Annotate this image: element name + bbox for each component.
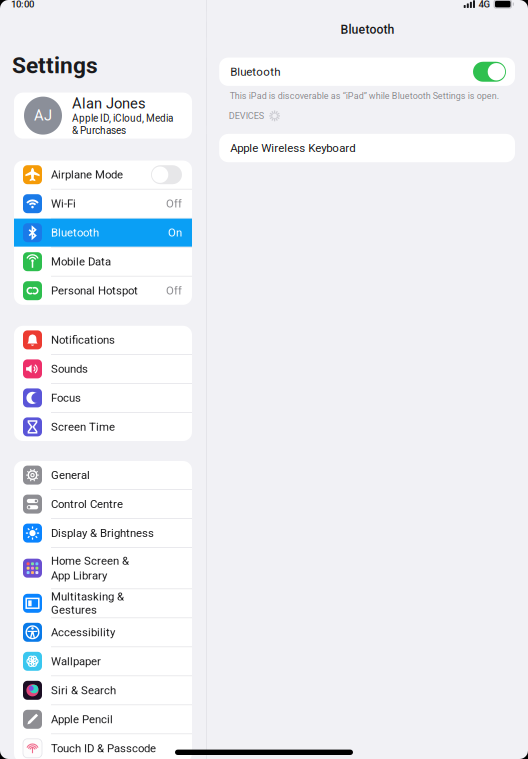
staticText: App Library: [51, 569, 107, 582]
staticText: Focus: [51, 391, 81, 405]
button[interactable]: Notifications: [14, 326, 192, 354]
button[interactable]: Siri & Search: [14, 676, 192, 704]
button[interactable]: AJ: [14, 93, 192, 139]
button[interactable]: Display & Brightness: [14, 519, 192, 547]
staticText: Off: [166, 197, 182, 210]
staticText: This iPad is discoverable as “iPad” whil…: [230, 91, 499, 101]
staticText: Off: [166, 284, 182, 297]
staticText: Personal Hotspot: [51, 284, 138, 297]
button[interactable]: Mobile Data: [14, 248, 192, 276]
staticText: Home Screen &: [51, 554, 129, 567]
button[interactable]: Apple Pencil: [14, 705, 192, 733]
button[interactable]: Airplane Mode: [14, 161, 192, 189]
staticText: Wallpaper: [51, 655, 101, 668]
staticText: Bluetooth: [51, 226, 99, 239]
staticText: Control Centre: [51, 497, 123, 511]
staticText: Apple Pencil: [51, 713, 113, 726]
button[interactable]: Touch ID & Passcode: [14, 734, 192, 759]
staticText: & Purchases: [72, 125, 126, 136]
staticText: Multitasking & Gestures: [51, 590, 124, 617]
button[interactable]: Control Centre: [14, 490, 192, 518]
button[interactable]: Bluetooth: [14, 219, 192, 247]
staticText: General: [51, 468, 90, 482]
staticText: Alan Jones: [72, 95, 146, 112]
staticText: 4G: [478, 0, 490, 10]
staticText: Apple Wireless Keyboard: [230, 141, 355, 155]
button[interactable]: Accessibility: [14, 618, 192, 646]
staticText: DEVICES: [229, 111, 264, 121]
staticText: Settings: [12, 52, 98, 79]
staticText: Bluetooth: [230, 65, 280, 78]
staticText: On: [168, 226, 182, 239]
staticText: Accessibility: [51, 626, 115, 639]
staticText: Wi-Fi: [51, 197, 76, 210]
staticText: Screen Time: [51, 420, 115, 434]
staticText: AJ: [34, 107, 52, 124]
staticText: Mobile Data: [51, 255, 111, 268]
button[interactable]: Screen Time: [14, 413, 192, 441]
button[interactable]: Multitasking & Gestures: [14, 589, 192, 617]
staticText: Touch ID & Passcode: [51, 742, 156, 755]
button[interactable]: Home Screen &: [14, 548, 192, 588]
staticText: Notifications: [51, 333, 115, 347]
button[interactable]: Sounds: [14, 355, 192, 383]
staticText: Display & Brightness: [51, 526, 154, 540]
staticText: Apple ID, iCloud, Media: [72, 112, 173, 124]
button[interactable]: Wallpaper: [14, 647, 192, 675]
staticText: Sounds: [51, 362, 88, 376]
staticText: Bluetooth: [340, 22, 394, 37]
staticText: Siri & Search: [51, 684, 116, 697]
staticText: 10:00: [11, 0, 34, 10]
staticText: Airplane Mode: [51, 168, 123, 181]
button[interactable]: Focus: [14, 384, 192, 412]
button[interactable]: General: [14, 461, 192, 489]
button[interactable]: Wi-Fi: [14, 190, 192, 218]
button[interactable]: Personal Hotspot: [14, 277, 192, 305]
